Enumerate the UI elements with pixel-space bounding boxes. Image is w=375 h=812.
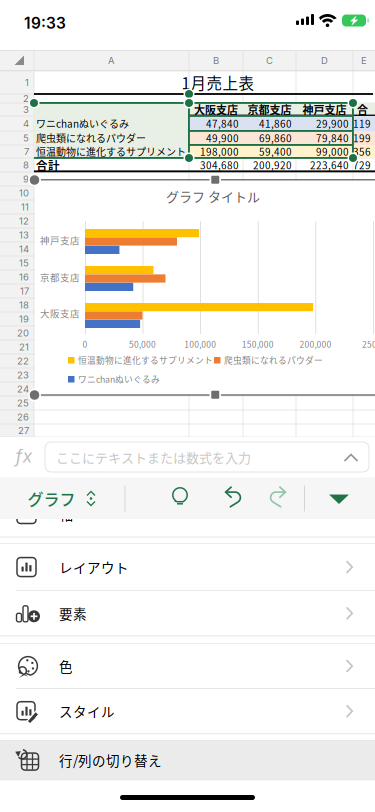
staticText: 京都支店 — [40, 270, 80, 284]
staticText: 119 — [353, 116, 371, 131]
button[interactable]: ここにテキストまたは数式を入力 — [45, 442, 369, 472]
staticText: 17 — [20, 285, 29, 297]
staticText: 18 — [19, 299, 29, 311]
staticText: 13 — [19, 229, 29, 241]
staticText: 色 — [59, 656, 73, 676]
staticText: E — [361, 55, 367, 66]
button[interactable]: Insert function — [4, 440, 44, 472]
button[interactable]: 行/列の切り替え — [0, 741, 375, 779]
staticText: D — [321, 55, 328, 66]
button[interactable]: 要素 — [0, 591, 375, 635]
staticText: 合計 — [36, 157, 60, 173]
staticText: レイアウト — [59, 557, 129, 577]
staticText: 8 — [23, 159, 29, 171]
staticText: 199 — [353, 131, 371, 145]
staticText: 行/列の切り替え — [59, 750, 162, 770]
staticText: 神戸支店 — [302, 101, 346, 117]
staticText: 47,840 — [206, 116, 239, 131]
staticText: 100,000 — [184, 338, 216, 350]
button[interactable]: グラフ — [0, 477, 124, 519]
staticText: C — [266, 55, 273, 66]
staticText: 59,400 — [259, 144, 292, 159]
staticText: 14 — [19, 243, 29, 255]
button[interactable]: Hide ribbon — [310, 477, 368, 519]
staticText: 200,920 — [253, 158, 292, 172]
staticText: 22 — [17, 355, 29, 367]
staticText: B — [213, 55, 219, 66]
staticText: fx — [15, 445, 32, 467]
staticText: 79,840 — [316, 131, 349, 145]
staticText: 要素 — [59, 603, 87, 623]
staticText: 200,000 — [299, 338, 331, 350]
staticText: 24 — [17, 383, 29, 395]
button[interactable]: レイアウト — [0, 544, 375, 590]
staticText: 150,000 — [242, 338, 274, 350]
staticText: 69,860 — [259, 131, 292, 145]
button[interactable]: Redo — [260, 477, 300, 519]
staticText: 恒温動物に進化するサプリメント — [36, 144, 186, 159]
staticText: 20 — [17, 327, 29, 339]
staticText: 50,000 — [129, 338, 156, 350]
staticText: 198,000 — [200, 144, 239, 159]
staticText: 3 — [23, 104, 29, 115]
staticText: 1 — [25, 77, 29, 88]
staticText: 27 — [18, 425, 29, 436]
staticText: 1月売上表 — [181, 71, 254, 94]
staticText: 9 — [23, 173, 29, 185]
staticText: 26 — [17, 411, 29, 423]
staticText: 7 — [24, 146, 29, 157]
staticText: 合 — [357, 101, 368, 117]
staticText: グラフ — [27, 487, 75, 510]
staticText: 23 — [17, 369, 29, 381]
staticText: 10 — [19, 187, 29, 199]
button[interactable]: 色 — [0, 644, 375, 688]
staticText: 京都支店 — [247, 101, 291, 117]
staticText: 41,860 — [259, 116, 292, 131]
staticText: 99,000 — [316, 144, 349, 159]
button[interactable]: Undo — [211, 477, 251, 519]
staticText: 12 — [19, 215, 29, 227]
staticText: A — [108, 55, 115, 66]
staticText: 11 — [21, 201, 29, 213]
staticText: 304,680 — [200, 158, 239, 172]
staticText: 爬虫類になれるパウダー — [36, 131, 146, 145]
staticText: 16 — [19, 271, 29, 283]
staticText: 19 — [19, 313, 29, 325]
staticText: 25 — [17, 397, 29, 409]
staticText: 223,640 — [310, 158, 349, 172]
staticText: ワニchanぬいぐるみ — [78, 373, 160, 385]
staticText: 729 — [353, 158, 371, 172]
staticText: 4 — [23, 118, 29, 129]
staticText: 15 — [19, 257, 29, 269]
staticText: ワニchanぬいぐるみ — [36, 116, 129, 131]
staticText: グラフ タイトル — [166, 187, 260, 205]
staticText: 神戸支店 — [40, 233, 80, 247]
button[interactable]: スタイル — [0, 689, 375, 733]
staticText: 恒温動物に進化するサプリメント — [78, 354, 213, 366]
staticText: 2 — [23, 93, 29, 104]
staticText: 356 — [353, 144, 371, 159]
staticText: 大阪支店 — [40, 306, 80, 320]
staticText: 250,0 — [362, 338, 375, 350]
staticText: 29,900 — [316, 116, 349, 131]
staticText: 爬虫類になれるパウダー — [224, 354, 323, 366]
button[interactable]: Ideas — [160, 477, 200, 519]
staticText: 19:33 — [24, 14, 66, 32]
button[interactable]: Expand formula bar — [340, 448, 362, 466]
staticText: 軸 — [59, 504, 73, 524]
staticText: ここにテキストまたは数式を入力 — [56, 448, 251, 466]
staticText: 5 — [23, 132, 29, 144]
staticText: 49,900 — [206, 131, 239, 145]
staticText: スタイル — [59, 701, 115, 721]
staticText: 0 — [82, 338, 87, 350]
staticText: 大阪支店 — [194, 101, 238, 117]
staticText: 21 — [19, 341, 29, 353]
